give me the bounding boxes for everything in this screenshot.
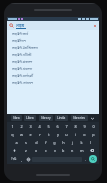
button[interactable]: n: [68, 147, 77, 154]
staticText: ,: [21, 157, 22, 162]
staticText: libra: [13, 116, 20, 120]
staticText: c: [45, 148, 47, 153]
button[interactable]: i: [71, 131, 80, 138]
staticText: 9: [83, 124, 86, 129]
button[interactable]: More suggestions: [90, 116, 95, 121]
staticText: 4: [38, 124, 41, 129]
button[interactable]: Search: [7, 21, 99, 30]
button[interactable]: 1: [8, 123, 17, 130]
button[interactable]: Backspace: [86, 147, 98, 154]
staticText: t: [48, 132, 50, 137]
staticText: libraries: [73, 116, 86, 120]
button[interactable]: z: [21, 147, 31, 154]
button[interactable]: लाइब्रेरी-भंडारण: [7, 65, 99, 72]
button[interactable]: c: [41, 147, 50, 154]
button[interactable]: o: [80, 131, 89, 138]
staticText: ?१&: [11, 157, 17, 161]
button[interactable]: b: [59, 147, 68, 154]
staticText: लाइब्रेरी-पत्रिकी: [12, 52, 32, 57]
staticText: d: [35, 140, 38, 145]
button[interactable]: 7: [62, 123, 71, 130]
button[interactable]: 8: [71, 123, 80, 130]
staticText: b: [62, 148, 65, 153]
button[interactable]: y: [53, 131, 62, 138]
staticText: 3: [29, 124, 32, 129]
staticText: लाइब्रेरियन: [12, 38, 26, 43]
staticText: लाइब: [16, 23, 25, 28]
staticText: 6: [56, 124, 59, 129]
button[interactable]: w: [17, 131, 26, 138]
staticText: लाइब्रेरी-मार्गदर्शी: [12, 73, 34, 78]
button[interactable]: h: [59, 139, 68, 146]
staticText: 5: [47, 124, 50, 129]
staticText: x: [35, 148, 38, 153]
button[interactable]: library: [39, 115, 53, 121]
staticText: z: [25, 148, 27, 153]
staticText: लाइब्रेरी कार्ड: [12, 31, 29, 36]
button[interactable]: लाइब्रेरियन: [7, 37, 99, 44]
button[interactable]: r: [35, 131, 44, 138]
button[interactable]: q: [8, 131, 17, 138]
button[interactable]: 4: [35, 123, 44, 130]
staticText: 1: [11, 124, 14, 129]
button[interactable]: ,: [19, 155, 24, 163]
button[interactable]: Linda: [55, 115, 68, 121]
button[interactable]: 9: [80, 123, 89, 130]
button[interactable]: लाइब्रेरी-अध्ययन: [7, 79, 99, 86]
button[interactable]: t: [44, 131, 53, 138]
button[interactable]: v: [50, 147, 59, 154]
button[interactable]: x: [31, 147, 41, 154]
button[interactable]: ?१&: [9, 155, 18, 163]
staticText: लाइब्रेरी-भंडारण: [12, 66, 33, 71]
button[interactable]: Search: [89, 155, 97, 163]
button[interactable]: लाइब्रेरी-मार्गदर्शी: [7, 72, 99, 79]
button[interactable]: 3: [26, 123, 35, 130]
button[interactable]: l: [86, 139, 95, 146]
button[interactable]: d: [31, 139, 41, 146]
staticText: i: [75, 132, 76, 137]
staticText: r: [39, 132, 41, 137]
button[interactable]: .: [83, 155, 88, 163]
button[interactable]: j: [68, 139, 77, 146]
button[interactable]: libra: [11, 115, 22, 121]
button[interactable]: Change language: [25, 155, 31, 163]
staticText: q: [11, 132, 14, 137]
staticText: .: [85, 157, 86, 162]
button[interactable]: f: [41, 139, 50, 146]
staticText: a: [15, 140, 18, 145]
button[interactable]: 2: [17, 123, 26, 130]
button[interactable]: libraries: [71, 115, 88, 121]
button[interactable]: लाइब्रेरी-संकलन: [7, 58, 99, 65]
staticText: 7: [65, 124, 68, 129]
staticText: v: [54, 148, 56, 153]
button[interactable]: Clear: [93, 24, 97, 28]
staticText: library: [41, 116, 51, 120]
staticText: 0: [92, 124, 95, 129]
staticText: लाइब्रेरी-प्रबन्धिकरण: [12, 45, 38, 50]
staticText: w: [20, 132, 23, 137]
button[interactable]: s: [21, 139, 31, 146]
button[interactable]: 5: [44, 123, 53, 130]
button[interactable]: m: [77, 147, 86, 154]
button[interactable]: लाइब्रेरी-प्रबन्धिकरण: [7, 44, 99, 51]
button[interactable]: p: [89, 131, 98, 138]
button[interactable]: 6: [53, 123, 62, 130]
staticText: k: [80, 140, 83, 145]
button[interactable]: Libra: [24, 115, 36, 121]
button[interactable]: a: [11, 139, 21, 146]
other: Search: [9, 23, 14, 28]
staticText: n: [71, 148, 74, 153]
button[interactable]: g: [50, 139, 59, 146]
staticText: l: [90, 140, 91, 145]
button[interactable]: k: [77, 139, 86, 146]
button[interactable]: Shift: [8, 147, 21, 154]
staticText: m: [80, 148, 84, 153]
button[interactable]: e: [26, 131, 35, 138]
staticText: 2: [20, 124, 23, 129]
button[interactable]: लाइब्रेरी-पत्रिकी: [7, 51, 99, 58]
staticText: f: [45, 140, 47, 145]
button[interactable]: u: [62, 131, 71, 138]
button[interactable]: लाइब्रेरी कार्ड: [7, 30, 99, 37]
button[interactable]: 0: [89, 123, 98, 130]
